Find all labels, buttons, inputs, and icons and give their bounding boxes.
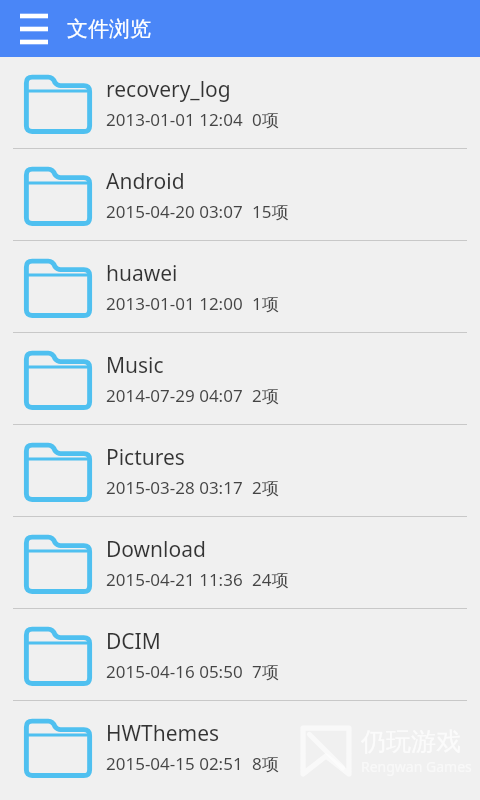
staticText: 2015-03-28 03:17 bbox=[106, 476, 243, 499]
staticText: 2015-04-21 11:36 bbox=[106, 568, 243, 591]
staticText: 8项 bbox=[252, 752, 279, 775]
staticText: 0项 bbox=[252, 108, 279, 131]
button[interactable]: DCIM bbox=[0, 609, 480, 700]
staticText: Android bbox=[106, 167, 185, 196]
staticText: DCIM bbox=[106, 627, 161, 656]
staticText: 24项 bbox=[252, 568, 289, 591]
staticText: 2013-01-01 12:04 bbox=[106, 108, 243, 131]
staticText: 2015-04-16 05:50 bbox=[106, 660, 243, 683]
button[interactable]: Pictures bbox=[0, 425, 480, 516]
button[interactable]: recovery_log bbox=[0, 57, 480, 148]
button[interactable]: Android bbox=[0, 149, 480, 240]
staticText: recovery_log bbox=[106, 75, 231, 104]
staticText: HWThemes bbox=[106, 719, 220, 748]
staticText: 7项 bbox=[252, 660, 279, 683]
staticText: Download bbox=[106, 535, 206, 564]
staticText: 2项 bbox=[252, 476, 279, 499]
staticText: 文件浏览 bbox=[67, 16, 151, 42]
staticText: Music bbox=[106, 351, 164, 380]
staticText: huawei bbox=[106, 259, 178, 288]
staticText: 2013-01-01 12:00 bbox=[106, 292, 243, 315]
staticText: 仍玩游戏 bbox=[361, 726, 461, 757]
staticText: Pictures bbox=[106, 443, 185, 472]
staticText: 2项 bbox=[252, 384, 279, 407]
button[interactable]: HWThemes bbox=[0, 701, 480, 792]
staticText: 2015-04-20 03:07 bbox=[106, 200, 243, 223]
staticText: 1项 bbox=[252, 292, 279, 315]
button[interactable]: Menu bbox=[20, 17, 48, 41]
button[interactable]: huawei bbox=[0, 241, 480, 332]
staticText: 15项 bbox=[252, 200, 289, 223]
button[interactable]: Download bbox=[0, 517, 480, 608]
button[interactable]: Music bbox=[0, 333, 480, 424]
staticText: 2014-07-29 04:07 bbox=[106, 384, 243, 407]
staticText: 2015-04-15 02:51 bbox=[106, 752, 243, 775]
